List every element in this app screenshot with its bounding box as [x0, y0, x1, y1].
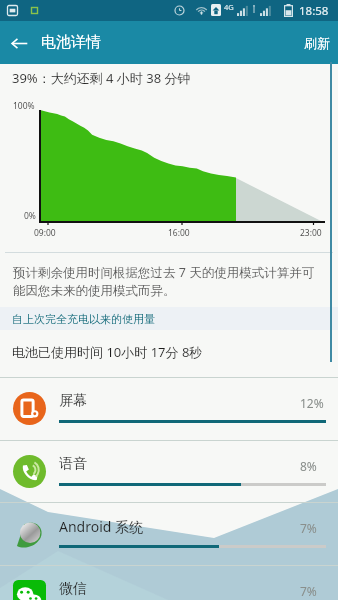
staticText: 电池已使用时间 10小时 17分 8秒 — [12, 343, 203, 361]
staticText: 屏幕 — [59, 392, 87, 410]
button[interactable]: Android 系统 — [0, 502, 338, 565]
staticText: 09:00 — [34, 227, 56, 239]
staticText: 7% — [300, 520, 317, 536]
staticText: 4G — [224, 2, 234, 12]
staticText: 刷新 — [304, 35, 330, 51]
button[interactable]: Back — [0, 24, 38, 62]
button[interactable]: 语音 — [0, 440, 338, 503]
staticText: 微信 — [59, 580, 87, 598]
staticText: 0% — [24, 210, 36, 222]
button[interactable]: 屏幕 — [0, 377, 338, 440]
staticText: 39%：大约还剩 4 小时 38 分钟 — [12, 69, 191, 87]
staticText: 100% — [13, 100, 35, 112]
staticText: 18:58 — [299, 3, 329, 19]
button[interactable]: 刷新 — [296, 21, 338, 64]
staticText: 7% — [300, 583, 317, 599]
staticText: 预计剩余使用时间根据您过去 7 天的使用模式计算并可能因您未来的使用模式而异。 — [13, 264, 319, 299]
staticText: 语音 — [59, 455, 87, 473]
staticText: 16:00 — [168, 227, 190, 239]
button[interactable]: 微信 — [0, 565, 338, 600]
staticText: 自上次完全充电以来的使用量 — [12, 312, 155, 326]
staticText: 8% — [300, 458, 317, 474]
staticText: 23:00 — [300, 227, 322, 239]
staticText: 12% — [300, 395, 324, 411]
staticText: 电池详情 — [41, 33, 101, 52]
staticText: Android 系统 — [59, 517, 144, 536]
